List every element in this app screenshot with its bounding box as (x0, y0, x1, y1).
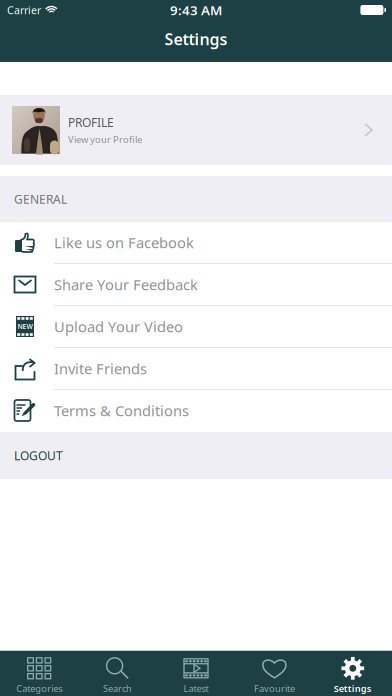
staticText: Latest (183, 682, 208, 695)
button[interactable]: Share Your Feedback (0, 264, 392, 306)
button[interactable]: NEW (0, 306, 392, 348)
staticText: Settings (334, 682, 372, 695)
button[interactable]: Search (78, 650, 157, 696)
button[interactable]: Settings (314, 650, 392, 696)
staticText: 9:43 AM (170, 1, 222, 19)
staticText: Terms & Conditions (54, 401, 189, 420)
button[interactable]: Categories (0, 650, 78, 696)
staticText: Upload Your Video (54, 317, 183, 336)
staticText: View your Profile (68, 133, 142, 146)
staticText: PROFILE (68, 114, 114, 130)
button[interactable]: Latest (157, 650, 235, 696)
button[interactable]: PROFILE (0, 95, 392, 165)
staticText: Categories (16, 682, 62, 695)
button[interactable]: Like us on Facebook (0, 222, 392, 264)
staticText: Carrier (7, 3, 41, 17)
button[interactable]: Favourite (235, 650, 314, 696)
button[interactable]: LOGOUT (0, 432, 392, 479)
button[interactable]: Invite Friends (0, 348, 392, 390)
staticText: GENERAL (14, 191, 67, 207)
staticText: Like us on Facebook (54, 233, 194, 252)
staticText: Share Your Feedback (54, 275, 198, 294)
staticText: NEW (17, 322, 32, 331)
staticText: Invite Friends (54, 359, 147, 378)
staticText: Search (103, 682, 132, 695)
button[interactable]: Terms & Conditions (0, 390, 392, 432)
staticText: Settings (164, 28, 227, 50)
staticText: Favourite (254, 682, 295, 695)
staticText: LOGOUT (14, 447, 63, 463)
